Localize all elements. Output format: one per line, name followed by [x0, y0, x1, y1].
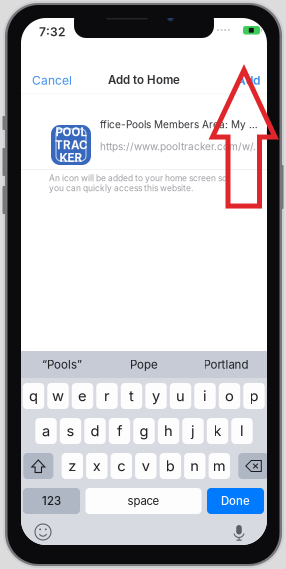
staticText: i: [203, 387, 207, 405]
button[interactable]: p: [243, 383, 265, 409]
staticText: 123: [42, 494, 61, 508]
button[interactable]: Clear text: [264, 125, 277, 138]
button[interactable]: j: [182, 418, 204, 444]
staticText: KER: [59, 151, 82, 165]
staticText: w: [52, 387, 64, 405]
staticText: z: [68, 457, 76, 475]
staticText: s: [66, 422, 74, 440]
staticText: Pope: [130, 358, 158, 371]
staticText: j: [191, 422, 195, 440]
staticText: t: [129, 387, 134, 405]
button[interactable]: s: [60, 418, 81, 444]
staticText: u: [176, 387, 185, 405]
staticText: f: [117, 422, 122, 440]
button[interactable]: w: [47, 383, 69, 409]
staticText: h: [164, 422, 173, 440]
staticText: ffice-Pools Members Area: My Pools: [100, 118, 260, 131]
staticText: https://www.pooltracker.com/w/...: [100, 140, 262, 153]
button[interactable]: Add: [226, 68, 267, 92]
staticText: p: [249, 387, 258, 405]
button[interactable]: “Pools”: [21, 351, 103, 378]
button[interactable]: 123: [23, 488, 80, 514]
button[interactable]: Pope: [103, 351, 185, 378]
staticText: q: [29, 387, 38, 405]
staticText: TRAC: [55, 138, 87, 152]
staticText: Done: [221, 494, 250, 508]
staticText: e: [78, 387, 87, 405]
button[interactable]: g: [133, 418, 155, 444]
button[interactable]: l: [231, 418, 253, 444]
button[interactable]: x: [86, 453, 107, 479]
button[interactable]: Dictation: [229, 522, 249, 542]
button[interactable]: n: [184, 453, 205, 479]
staticText: m: [213, 457, 226, 475]
button[interactable]: v: [135, 453, 156, 479]
button[interactable]: t: [121, 383, 142, 409]
button[interactable]: u: [170, 383, 191, 409]
button[interactable]: a: [35, 418, 57, 444]
staticText: l: [240, 422, 244, 440]
button[interactable]: z: [62, 453, 83, 479]
button[interactable]: Shift: [23, 453, 53, 479]
button[interactable]: d: [84, 418, 106, 444]
staticText: a: [42, 422, 50, 440]
staticText: k: [213, 422, 221, 440]
button[interactable]: b: [160, 453, 181, 479]
button[interactable]: k: [207, 418, 228, 444]
staticText: g: [139, 422, 148, 440]
button[interactable]: y: [145, 383, 167, 409]
staticText: space: [127, 494, 159, 508]
button[interactable]: f: [109, 418, 130, 444]
button[interactable]: Cancel: [25, 68, 79, 92]
staticText: c: [117, 457, 125, 475]
button[interactable]: m: [209, 453, 230, 479]
staticText: y: [152, 387, 160, 405]
button[interactable]: Emoji keyboard: [33, 522, 53, 542]
staticText: x: [93, 457, 101, 475]
staticText: Add to Home: [108, 73, 180, 87]
staticText: An icon will be added to your home scree…: [49, 173, 227, 193]
staticText: n: [190, 457, 199, 475]
button[interactable]: Portland: [185, 351, 267, 378]
button[interactable]: space: [85, 488, 201, 514]
staticText: v: [142, 457, 150, 475]
button[interactable]: o: [219, 383, 240, 409]
button[interactable]: r: [96, 383, 118, 409]
staticText: o: [225, 387, 234, 405]
button[interactable]: h: [158, 418, 179, 444]
button[interactable]: Delete: [238, 453, 268, 479]
staticText: d: [90, 422, 99, 440]
staticText: 7:32: [39, 24, 65, 39]
staticText: Add: [237, 73, 260, 87]
staticText: r: [104, 387, 110, 405]
staticText: Portland: [203, 358, 248, 371]
button[interactable]: e: [72, 383, 93, 409]
staticText: b: [166, 457, 175, 475]
staticText: Cancel: [32, 73, 72, 87]
button[interactable]: i: [194, 383, 216, 409]
button[interactable]: c: [111, 453, 132, 479]
staticText: POOL: [55, 125, 86, 139]
button[interactable]: Done: [207, 488, 264, 514]
staticText: “Pools”: [42, 358, 82, 371]
button[interactable]: q: [23, 383, 44, 409]
